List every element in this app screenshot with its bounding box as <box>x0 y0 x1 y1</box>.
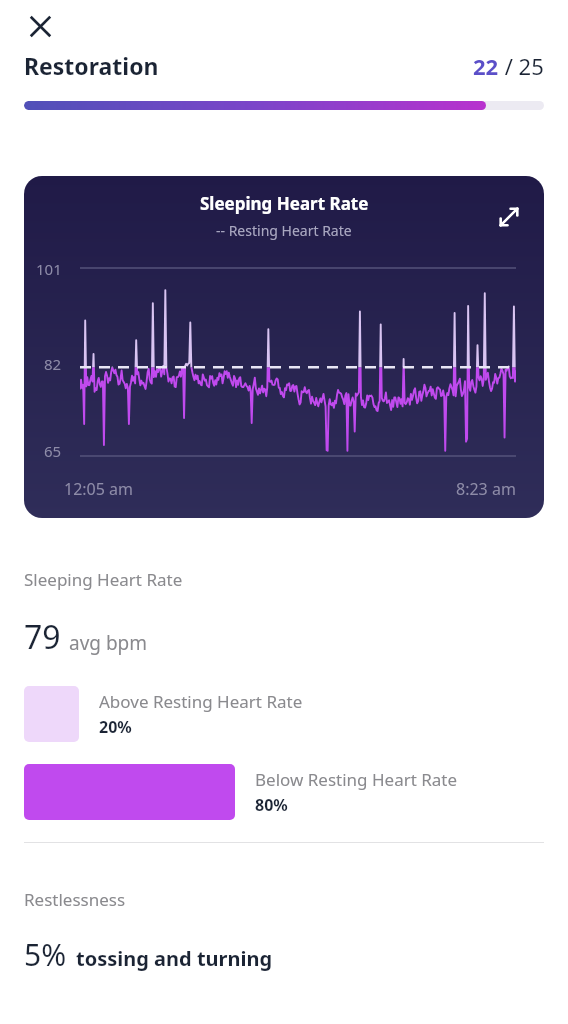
button[interactable]: Below Resting Heart Rate <box>24 764 544 820</box>
staticText: 82 <box>44 354 62 374</box>
staticText: 65 <box>44 441 62 461</box>
staticText: 12:05 am <box>64 478 133 500</box>
staticText: -- Resting Heart Rate <box>216 221 352 240</box>
staticText: avg bpm <box>69 630 148 656</box>
staticText: 22 <box>473 51 499 81</box>
staticText: 20% <box>99 716 132 738</box>
staticText: 101 <box>36 259 62 279</box>
staticText: 8:23 am <box>456 478 516 500</box>
button[interactable]: Close <box>16 2 64 50</box>
staticText: Sleeping Heart Rate <box>24 568 183 591</box>
button[interactable]: Above Resting Heart Rate <box>24 686 544 742</box>
staticText: Restlessness <box>24 888 126 911</box>
staticText: / 25 <box>499 51 544 81</box>
staticText: 79 <box>24 615 61 659</box>
button[interactable]: Sleeping Heart Rate <box>24 176 544 518</box>
button[interactable]: Expand chart <box>486 194 532 240</box>
staticText: tossing and turning <box>76 945 273 972</box>
staticText: Sleeping Heart Rate <box>200 192 369 215</box>
staticText: 5% <box>24 934 67 975</box>
staticText: Below Resting Heart Rate <box>255 768 458 791</box>
staticText: Restoration <box>24 50 159 81</box>
staticText: 80% <box>255 794 288 816</box>
staticText: Above Resting Heart Rate <box>99 690 303 713</box>
